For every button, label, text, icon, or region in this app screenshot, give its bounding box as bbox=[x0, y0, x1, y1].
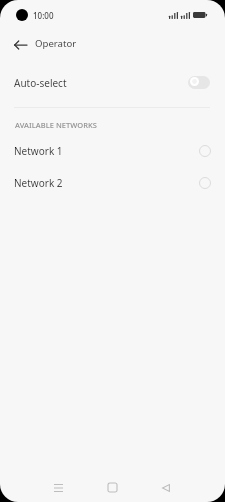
button[interactable]: Network 1 bbox=[0, 133, 225, 165]
button[interactable]: Home bbox=[100, 475, 124, 499]
staticText: AVAILABLE NETWORKS bbox=[15, 120, 98, 130]
staticText: Auto-select bbox=[14, 76, 67, 90]
staticText: 10:00 bbox=[33, 10, 54, 21]
staticText: Operator bbox=[35, 37, 77, 50]
button[interactable]: Network 2 bbox=[0, 165, 225, 197]
button[interactable]: Back bbox=[6, 31, 34, 59]
button[interactable]: Recent apps bbox=[46, 476, 70, 500]
staticText: Network 1 bbox=[14, 144, 63, 158]
button[interactable]: Auto-select bbox=[0, 66, 225, 106]
staticText: Network 2 bbox=[14, 176, 63, 190]
button[interactable]: Back bbox=[154, 476, 178, 500]
